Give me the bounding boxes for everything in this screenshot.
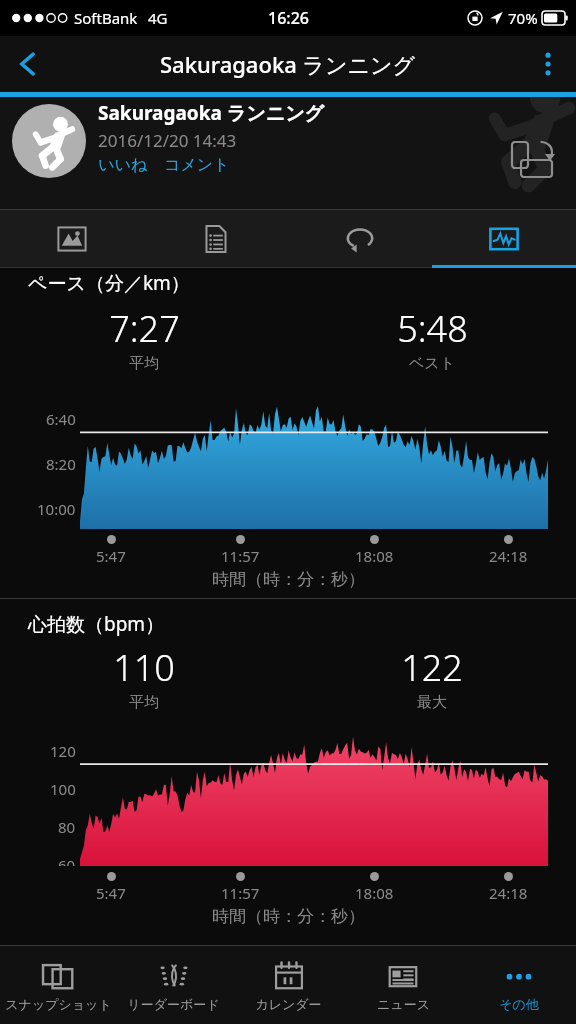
staticText: 5:47	[96, 546, 126, 566]
staticText: 16:26	[268, 7, 309, 29]
staticText: 心拍数（bpm）	[28, 611, 165, 637]
staticText: Sakuragaoka ランニング	[98, 100, 325, 126]
staticText: 4G	[148, 8, 168, 28]
staticText: SoftBank	[74, 8, 138, 28]
staticText: 8:20	[46, 454, 76, 474]
button[interactable]: More options	[520, 36, 576, 92]
staticText: 2016/12/20 14:43	[98, 129, 237, 152]
button[interactable]: スナップショット	[0, 946, 116, 1024]
staticText: ベスト	[409, 354, 456, 373]
staticText: 70%	[508, 8, 538, 28]
button[interactable]: リーダーボード	[116, 946, 231, 1024]
staticText: ニュース	[377, 996, 430, 1012]
staticText: 100	[50, 779, 76, 799]
staticText: 6:40	[46, 409, 76, 429]
staticText: 5:47	[96, 883, 126, 903]
staticText: ペース（分／km）	[28, 270, 190, 296]
staticText: 24:18	[489, 546, 528, 566]
staticText: その他	[499, 996, 539, 1012]
staticText: 122	[401, 643, 463, 692]
staticText: 時間（時：分：秒）	[212, 569, 365, 590]
staticText: 18:08	[355, 883, 394, 903]
button[interactable]: Back	[0, 36, 56, 92]
staticText: 18:08	[355, 546, 394, 566]
button[interactable]: Laps	[288, 210, 432, 268]
staticText: コメント	[164, 155, 230, 175]
button[interactable]: いいね	[98, 155, 148, 175]
button[interactable]: コメント	[164, 155, 230, 175]
staticText: 平均	[129, 354, 159, 373]
staticText: 10:00	[37, 499, 76, 519]
button[interactable]: Map	[0, 210, 144, 268]
button[interactable]: Sakuragaoka ランニング	[0, 92, 576, 210]
staticText: 60	[58, 855, 76, 866]
button[interactable]: Rotate device	[508, 135, 562, 189]
button[interactable]: その他	[461, 946, 576, 1024]
staticText: カレンダー	[255, 996, 322, 1012]
staticText: Sakuragaoka ランニング	[160, 49, 416, 79]
button[interactable]: カレンダー	[231, 946, 346, 1024]
staticText: 110	[113, 643, 175, 692]
staticText: 最大	[417, 693, 447, 712]
staticText: 24:18	[489, 883, 528, 903]
button[interactable]: ニュース	[346, 946, 461, 1024]
staticText: 80	[58, 817, 76, 837]
staticText: いいね	[98, 155, 148, 175]
button[interactable]: Details	[144, 210, 288, 268]
button[interactable]: Graphs	[432, 210, 576, 268]
staticText: 7:27	[109, 304, 180, 353]
staticText: リーダーボード	[127, 996, 220, 1012]
staticText: 時間（時：分：秒）	[212, 906, 365, 927]
staticText: 120	[50, 741, 76, 761]
staticText: 平均	[129, 693, 159, 712]
staticText: 11:57	[221, 546, 260, 566]
staticText: 5:48	[397, 304, 468, 353]
staticText: スナップショット	[5, 996, 112, 1012]
staticText: 11:57	[221, 883, 260, 903]
